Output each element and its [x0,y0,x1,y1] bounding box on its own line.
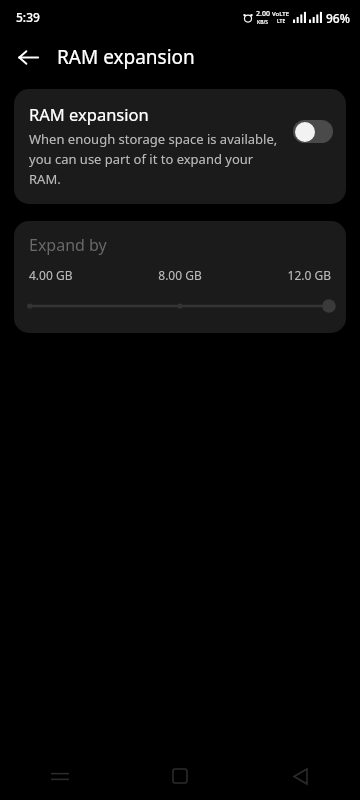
staticText: RAM expansion [57,44,195,70]
button[interactable]: Recents [0,752,120,800]
staticText: 8.00 GB [158,267,202,283]
staticText: 96% [326,10,350,26]
staticText: 5:39 [16,9,40,25]
button[interactable]: RAM expansion toggle [293,120,333,143]
button[interactable]: Expand by [14,221,346,333]
staticText: Expand by [29,234,107,256]
staticText: 2.00 [256,9,270,19]
staticText: When enough storage space is available, … [29,130,287,188]
button[interactable]: Back [240,752,360,800]
staticText: RAM expansion [29,103,149,125]
button[interactable]: Back [8,37,48,77]
button[interactable]: Expand by slider [29,295,331,317]
staticText: 12.0 GB [287,267,331,283]
button[interactable]: RAM expansion [14,89,346,204]
staticText: LTE [277,18,286,25]
button[interactable]: Home [120,752,240,800]
staticText: KB/S [257,19,269,26]
staticText: VoLTE [272,10,290,18]
staticText: 4.00 GB [29,267,73,283]
